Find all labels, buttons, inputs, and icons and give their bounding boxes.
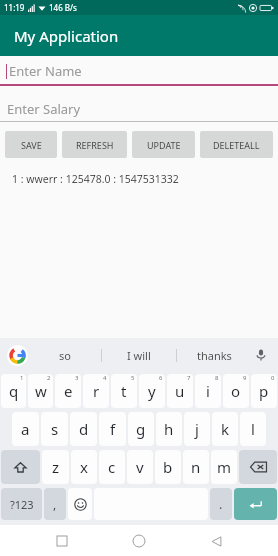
button[interactable]: Comma	[44, 488, 66, 520]
staticText: m	[217, 457, 232, 477]
staticText: 4	[103, 374, 107, 382]
staticText: p	[259, 381, 269, 401]
button[interactable]: Backspace	[239, 450, 277, 484]
button[interactable]: j	[184, 412, 210, 446]
button[interactable]: a	[12, 412, 39, 446]
button[interactable]: o	[223, 374, 249, 408]
button[interactable]: h	[156, 412, 182, 446]
staticText: e	[64, 381, 73, 401]
button[interactable]: Recents	[47, 526, 77, 556]
button[interactable]: Enter Salary	[0, 96, 278, 122]
staticText: f	[110, 419, 116, 439]
button[interactable]: Period	[210, 488, 232, 520]
button[interactable]: ?123	[1, 488, 42, 520]
staticText: ?123	[10, 497, 34, 512]
button[interactable]: REFRESH	[62, 131, 127, 158]
staticText: 11:19	[4, 2, 25, 13]
button[interactable]: Voice input	[251, 338, 271, 372]
button[interactable]: m	[211, 450, 237, 484]
staticText: 0	[271, 374, 275, 382]
staticText: c	[108, 457, 116, 477]
button[interactable]: so	[28, 338, 101, 372]
staticText: 1 : wwerr : 125478.0 : 1547531332	[12, 172, 179, 186]
button[interactable]: n	[183, 450, 209, 484]
staticText: Enter Salary	[7, 100, 81, 118]
staticText: l	[251, 419, 255, 439]
staticText: 1	[20, 374, 24, 382]
staticText: d	[79, 419, 89, 439]
staticText: I will	[127, 348, 151, 363]
staticText: w	[35, 381, 47, 401]
staticText: o	[231, 381, 241, 401]
staticText: 6	[159, 374, 163, 382]
button[interactable]: l	[240, 412, 266, 446]
button[interactable]: f	[99, 412, 126, 446]
staticText: r	[93, 381, 100, 401]
staticText: n	[191, 457, 201, 477]
button[interactable]: thanks	[177, 338, 251, 372]
staticText: SAVE	[21, 139, 42, 151]
staticText: v	[136, 457, 144, 477]
staticText: s	[51, 419, 59, 439]
button[interactable]: v	[127, 450, 153, 484]
staticText: .	[219, 496, 223, 512]
button[interactable]: Back	[201, 526, 231, 556]
staticText: 2	[47, 374, 51, 382]
staticText: ,	[53, 496, 57, 512]
button[interactable]: Shift	[1, 450, 40, 484]
button[interactable]: g	[128, 412, 154, 446]
staticText: k	[221, 419, 230, 439]
button[interactable]: Home	[124, 526, 154, 556]
staticText: 9	[243, 374, 247, 382]
button[interactable]: Enter	[234, 488, 277, 520]
staticText: My Application	[14, 26, 119, 46]
staticText: z	[52, 457, 60, 477]
staticText: g	[136, 419, 146, 439]
button[interactable]: z	[42, 450, 69, 484]
button[interactable]: r	[83, 374, 109, 408]
button[interactable]: I will	[102, 338, 176, 372]
staticText: Enter Name	[9, 62, 82, 80]
staticText: 146 B/s	[49, 2, 77, 13]
staticText: UPDATE	[147, 139, 181, 151]
staticText: b	[163, 457, 173, 477]
staticText: u	[175, 381, 185, 401]
button[interactable]: DELETEALL	[200, 131, 273, 158]
button[interactable]: SAVE	[5, 131, 57, 158]
button[interactable]: s	[41, 412, 68, 446]
staticText: 7	[187, 374, 191, 382]
staticText: x	[80, 457, 88, 477]
button[interactable]: u	[167, 374, 193, 408]
button[interactable]: w	[28, 374, 53, 408]
staticText: REFRESH	[76, 139, 114, 151]
staticText: so	[59, 348, 71, 363]
staticText: j	[195, 419, 199, 439]
staticText: t	[121, 381, 127, 401]
button[interactable]: b	[155, 450, 181, 484]
staticText: a	[21, 419, 30, 439]
staticText: 8	[215, 374, 219, 382]
button[interactable]: UPDATE	[132, 131, 195, 158]
button[interactable]: x	[71, 450, 97, 484]
staticText: 5	[131, 374, 135, 382]
button[interactable]: c	[99, 450, 125, 484]
staticText: thanks	[197, 348, 232, 363]
staticText: y	[148, 381, 156, 401]
button[interactable]: Enter Name	[0, 56, 278, 86]
button[interactable]: p	[251, 374, 277, 408]
button[interactable]: q	[1, 374, 26, 408]
button[interactable]: e	[55, 374, 81, 408]
button[interactable]: y	[139, 374, 165, 408]
button[interactable]: Google	[7, 345, 28, 366]
staticText: h	[164, 419, 174, 439]
staticText: q	[9, 381, 19, 401]
staticText: i	[206, 381, 210, 401]
button[interactable]: Emoji	[68, 488, 92, 520]
staticText: 3	[75, 374, 79, 382]
button[interactable]: t	[111, 374, 137, 408]
button[interactable]: k	[212, 412, 238, 446]
button[interactable]: i	[195, 374, 221, 408]
button[interactable]: d	[70, 412, 97, 446]
staticText: DELETEALL	[213, 139, 260, 151]
